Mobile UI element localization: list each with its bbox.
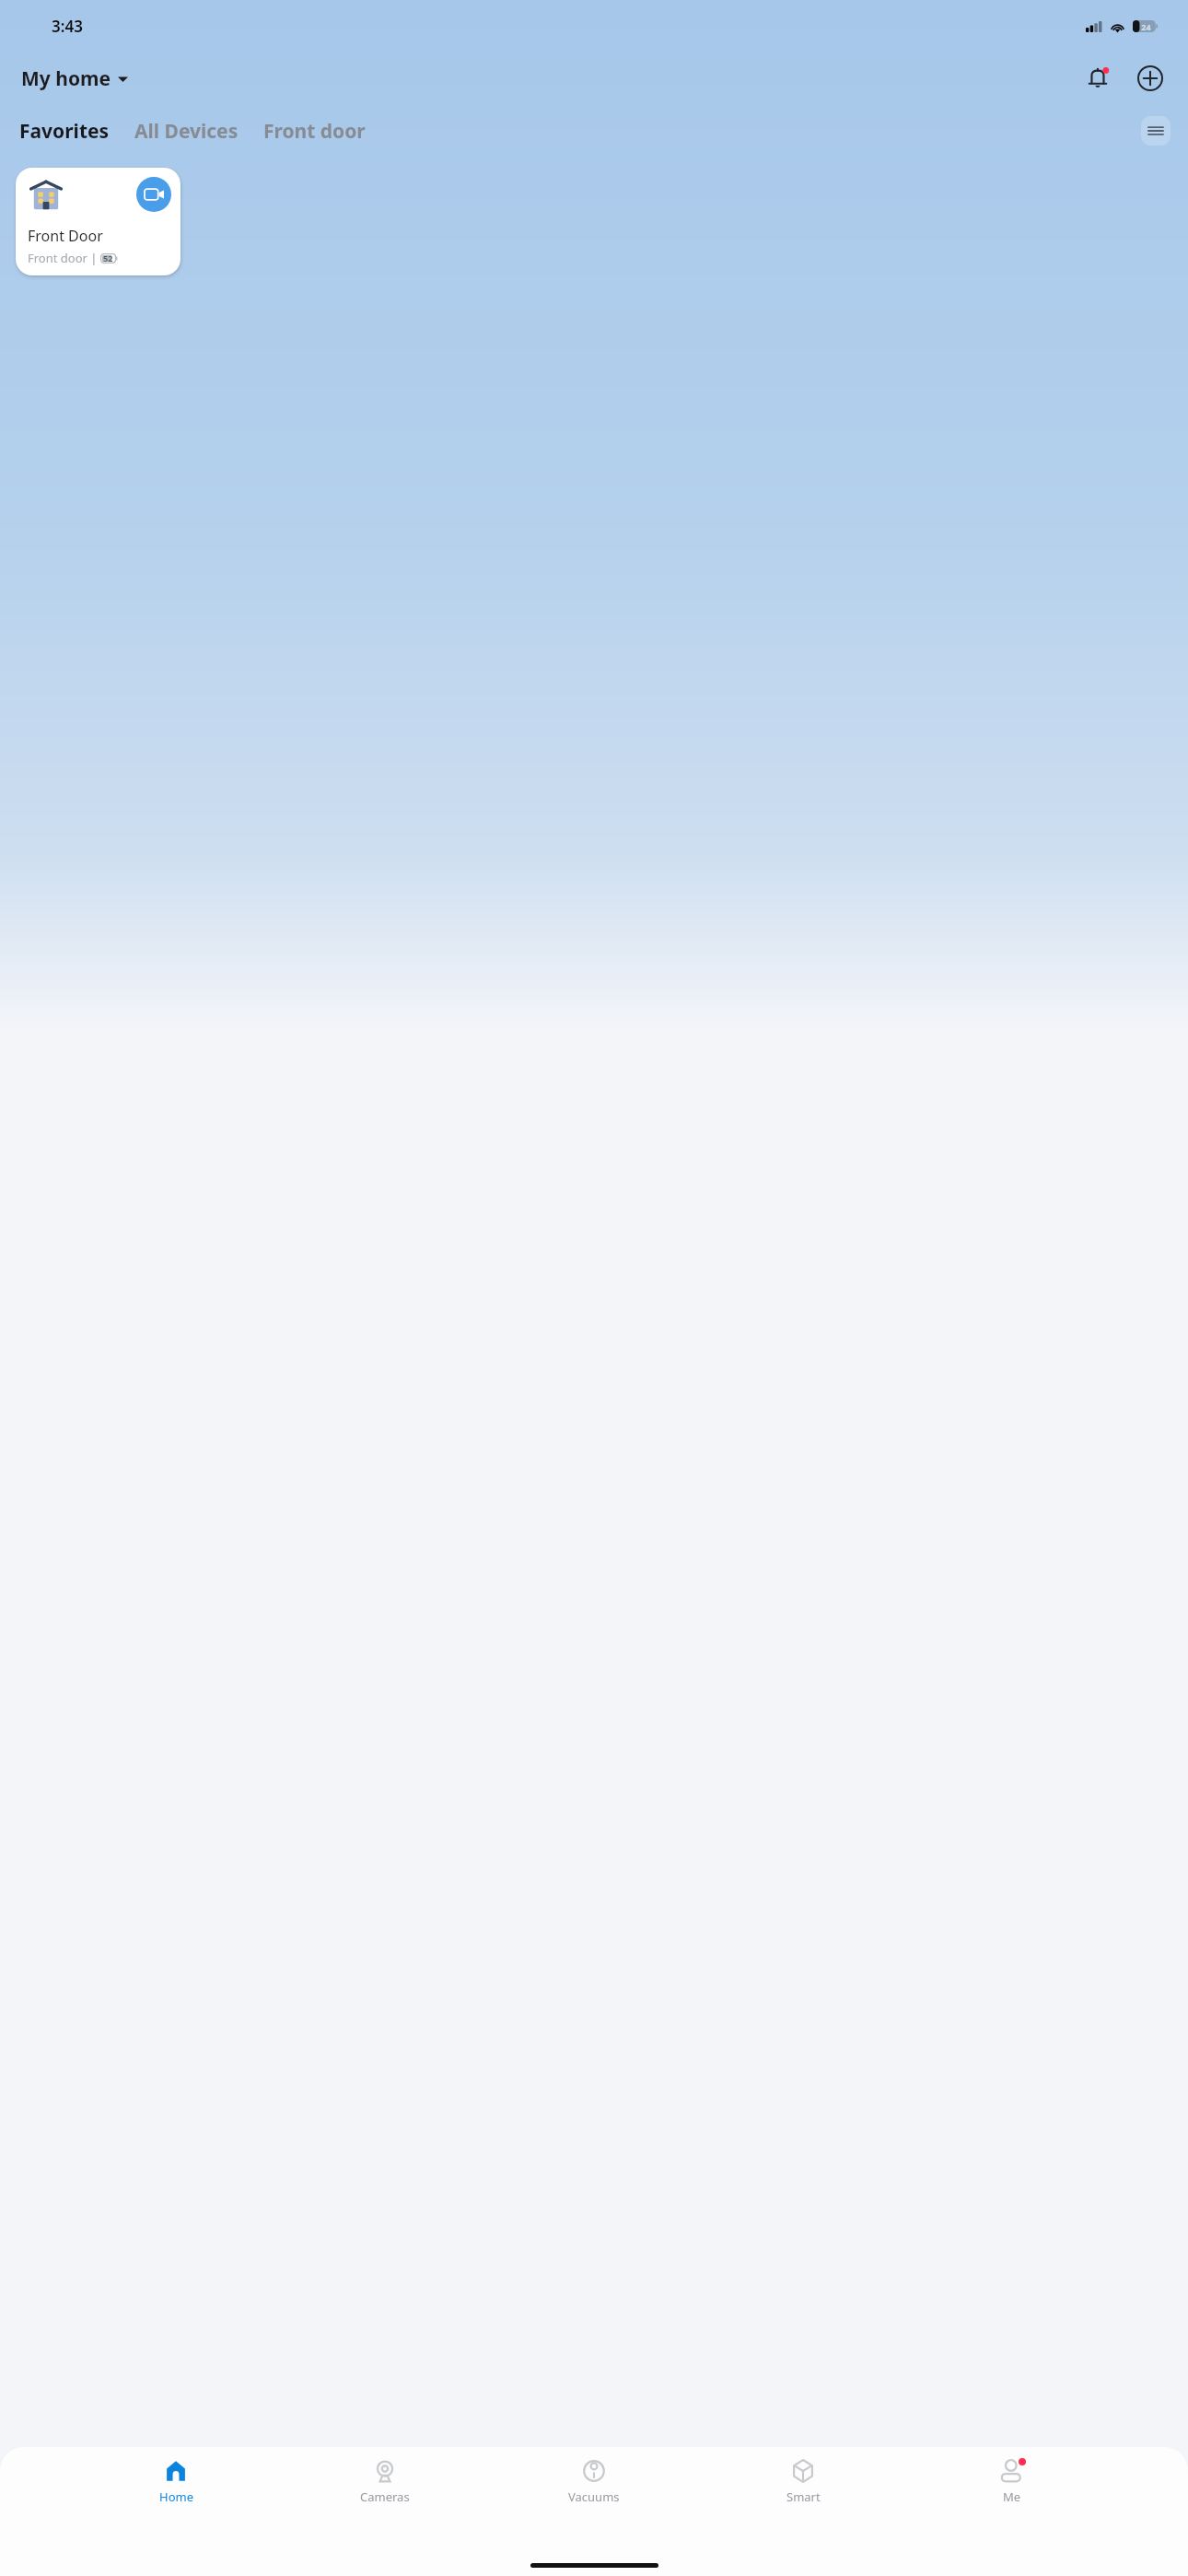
staticText: Me [1003, 2488, 1021, 2505]
button[interactable]: Add device [1130, 58, 1171, 99]
staticText: Front door [263, 118, 366, 145]
button[interactable]: Favorites [17, 118, 111, 145]
staticText: 52 [103, 252, 113, 263]
button[interactable]: Cameras [352, 2454, 418, 2508]
staticText: Vacuums [568, 2488, 620, 2505]
button[interactable]: List options [1141, 116, 1171, 146]
button[interactable]: Live view [136, 177, 171, 212]
staticText: All Devices [134, 118, 239, 145]
staticText: My home [21, 65, 111, 92]
button[interactable]: Front door [262, 118, 367, 145]
staticText: 3:43 [52, 16, 83, 37]
staticText: Cameras [360, 2488, 410, 2505]
staticText: 24 [1141, 21, 1151, 32]
staticText: Smart [786, 2488, 821, 2505]
button[interactable]: My home [17, 62, 132, 96]
button[interactable]: Vacuums [561, 2454, 627, 2508]
staticText: Favorites [19, 118, 110, 145]
button[interactable]: Home [143, 2454, 209, 2508]
staticText: Front door | [28, 250, 98, 266]
button[interactable]: Live view [16, 168, 181, 275]
button[interactable]: All Devices [133, 118, 240, 145]
button[interactable]: Smart [770, 2454, 836, 2508]
staticText: Front Door [28, 226, 103, 246]
button[interactable]: Me [979, 2454, 1045, 2508]
staticText: Home [159, 2488, 193, 2505]
button[interactable]: Notifications [1078, 58, 1119, 99]
